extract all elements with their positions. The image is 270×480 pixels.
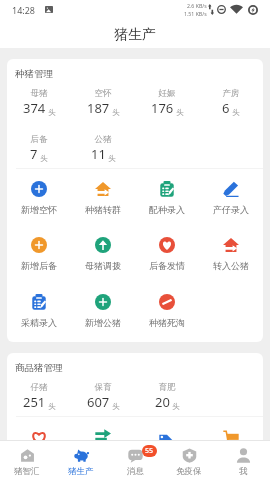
- staticText: 空怀: [71, 88, 135, 99]
- button[interactable]: 新增公猪: [71, 294, 135, 328]
- staticText: 头: [232, 108, 240, 117]
- staticText: 采精录入: [21, 317, 57, 328]
- staticText: 商品猪管理: [15, 362, 63, 374]
- staticText: 7: [30, 145, 38, 163]
- staticText: 猪生产: [68, 466, 94, 477]
- button[interactable]: 我: [216, 441, 270, 480]
- button[interactable]: 新增空怀: [7, 181, 71, 215]
- staticText: 种猪管理: [15, 68, 53, 80]
- staticText: 头: [112, 108, 120, 117]
- button[interactable]: 后备发情: [135, 237, 199, 271]
- staticText: 母猪: [7, 88, 71, 99]
- button[interactable]: 产房: [199, 87, 263, 121]
- staticText: 销售录入: [149, 452, 185, 463]
- staticText: 销售订单: [213, 452, 249, 463]
- staticText: 后备发情: [149, 260, 185, 271]
- staticText: 头: [48, 108, 56, 117]
- button[interactable]: 销售订单: [199, 429, 263, 463]
- button[interactable]: 仔猪: [7, 381, 71, 415]
- staticText: 20: [155, 393, 170, 411]
- staticText: 头: [40, 154, 48, 163]
- staticText: 11: [91, 145, 106, 163]
- staticText: 6: [222, 99, 230, 117]
- staticText: 种猪转群: [85, 204, 121, 215]
- staticText: 免疫保: [176, 466, 202, 477]
- staticText: 消息: [127, 466, 144, 477]
- button[interactable]: 免疫保: [162, 441, 216, 480]
- button[interactable]: 新增后备: [7, 237, 71, 271]
- staticText: 猪只调拨: [85, 452, 121, 463]
- staticText: 保育: [71, 382, 135, 393]
- staticText: 仔猪: [7, 382, 71, 393]
- staticText: 新增空怀: [21, 204, 57, 215]
- staticText: 头: [108, 154, 116, 163]
- button[interactable]: 销售录入: [135, 429, 199, 463]
- staticText: 251: [23, 393, 46, 411]
- button[interactable]: 猪只调拨: [71, 429, 135, 463]
- button[interactable]: 转入公猪: [199, 237, 263, 271]
- button[interactable]: 发情记录: [7, 429, 71, 463]
- button[interactable]: 母猪: [7, 87, 71, 121]
- staticText: 猪生产: [114, 26, 156, 44]
- button[interactable]: 猪生产: [54, 441, 108, 480]
- staticText: 374: [23, 99, 46, 117]
- staticText: 187: [87, 99, 110, 117]
- staticText: 607: [87, 393, 110, 411]
- staticText: 发情记录: [21, 452, 57, 463]
- button[interactable]: 种猪转群: [71, 181, 135, 215]
- staticText: 头: [48, 402, 56, 411]
- button[interactable]: 产仔录入: [199, 181, 263, 215]
- staticText: 头: [172, 402, 180, 411]
- staticText: 配种录入: [149, 204, 185, 215]
- button[interactable]: 配种录入: [135, 181, 199, 215]
- button[interactable]: 公猪: [71, 133, 135, 167]
- staticText: 产仔录入: [213, 204, 249, 215]
- button[interactable]: 55: [108, 441, 162, 480]
- staticText: 176: [151, 99, 174, 117]
- staticText: 后备: [7, 134, 71, 145]
- staticText: 母猪调拨: [85, 260, 121, 271]
- button[interactable]: 后备: [7, 133, 71, 167]
- staticText: 头: [112, 402, 120, 411]
- staticText: 猪智汇: [14, 466, 40, 477]
- staticText: 育肥: [135, 382, 199, 393]
- button[interactable]: 妊娠: [135, 87, 199, 121]
- staticText: 头: [176, 108, 184, 117]
- button[interactable]: 采精录入: [7, 294, 71, 328]
- staticText: 新增公猪: [85, 317, 121, 328]
- staticText: 种猪死淘: [149, 317, 185, 328]
- button[interactable]: 保育: [71, 381, 135, 415]
- staticText: 公猪: [71, 134, 135, 145]
- staticText: 产房: [199, 88, 263, 99]
- staticText: 55: [145, 446, 154, 456]
- button[interactable]: 种猪死淘: [135, 294, 199, 328]
- staticText: 2.6 KB/s: [187, 2, 207, 9]
- staticText: 新增后备: [21, 260, 57, 271]
- button[interactable]: 空怀: [71, 87, 135, 121]
- button[interactable]: 育肥: [135, 381, 199, 415]
- staticText: 14:28: [12, 4, 36, 16]
- button[interactable]: 母猪调拨: [71, 237, 135, 271]
- staticText: 转入公猪: [213, 260, 249, 271]
- button[interactable]: 猪智汇: [0, 441, 54, 480]
- staticText: 妊娠: [135, 88, 199, 99]
- staticText: 1.51 KB/s: [184, 10, 207, 17]
- staticText: 我: [239, 466, 248, 477]
